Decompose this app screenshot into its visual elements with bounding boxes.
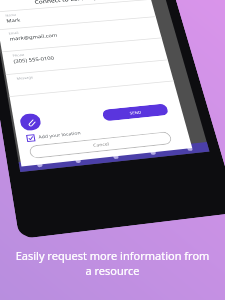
staticText: Message — [16, 75, 34, 80]
staticText: Phone — [12, 53, 26, 58]
staticText: Easily request more information from a r… — [14, 248, 211, 278]
button[interactable]: Profile — [170, 142, 209, 155]
button[interactable]: Cancel — [28, 131, 173, 159]
staticText: Email — [8, 31, 20, 35]
button[interactable]: Search — [19, 158, 60, 172]
staticText: Cancel — [92, 141, 110, 149]
button[interactable]: Favorites — [96, 150, 136, 164]
staticText: Connect to Lorem ipsum — [34, 0, 112, 6]
button[interactable]: Add your location — [27, 130, 82, 141]
button[interactable]: Attach file — [19, 113, 42, 132]
staticText: (305) 555-0100 — [13, 55, 55, 65]
staticText: Add your location — [38, 130, 82, 140]
button[interactable]: Filter — [133, 146, 173, 159]
button[interactable]: SEND — [102, 103, 169, 121]
staticText: SEND — [129, 109, 142, 115]
button[interactable]: Home — [58, 154, 98, 168]
staticText: Mark — [6, 17, 21, 24]
staticText: mark@gmail.com — [9, 32, 58, 42]
staticText: Name — [5, 13, 17, 17]
